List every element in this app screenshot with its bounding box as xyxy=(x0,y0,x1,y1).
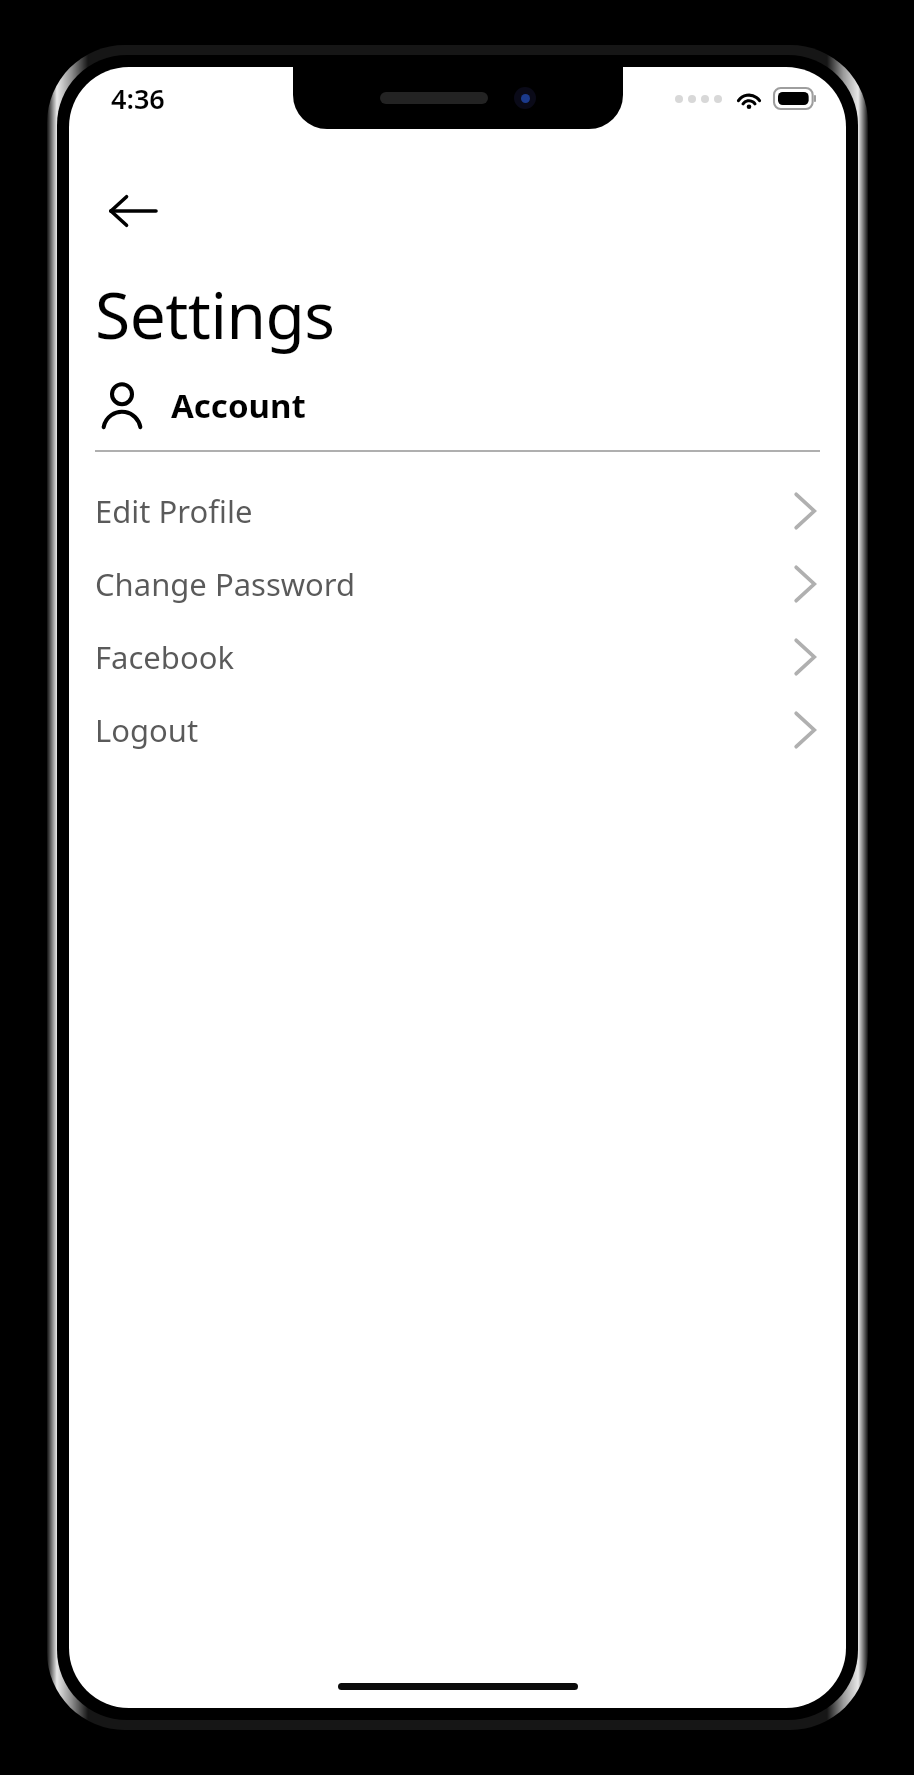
staticText: Settings xyxy=(95,271,335,358)
button[interactable]: Change Password xyxy=(69,547,846,620)
button[interactable]: Logout xyxy=(69,693,846,766)
button[interactable]: Back xyxy=(95,173,171,249)
staticText: Edit Profile xyxy=(95,490,253,532)
staticText: Change Password xyxy=(95,563,356,605)
staticText: 4:36 xyxy=(111,80,165,117)
staticText: Logout xyxy=(95,709,199,751)
button[interactable]: Account xyxy=(95,378,846,432)
button[interactable]: Edit Profile xyxy=(69,474,846,547)
staticText: Facebook xyxy=(95,636,234,678)
staticText: Account xyxy=(171,383,306,428)
button[interactable]: Facebook xyxy=(69,620,846,693)
